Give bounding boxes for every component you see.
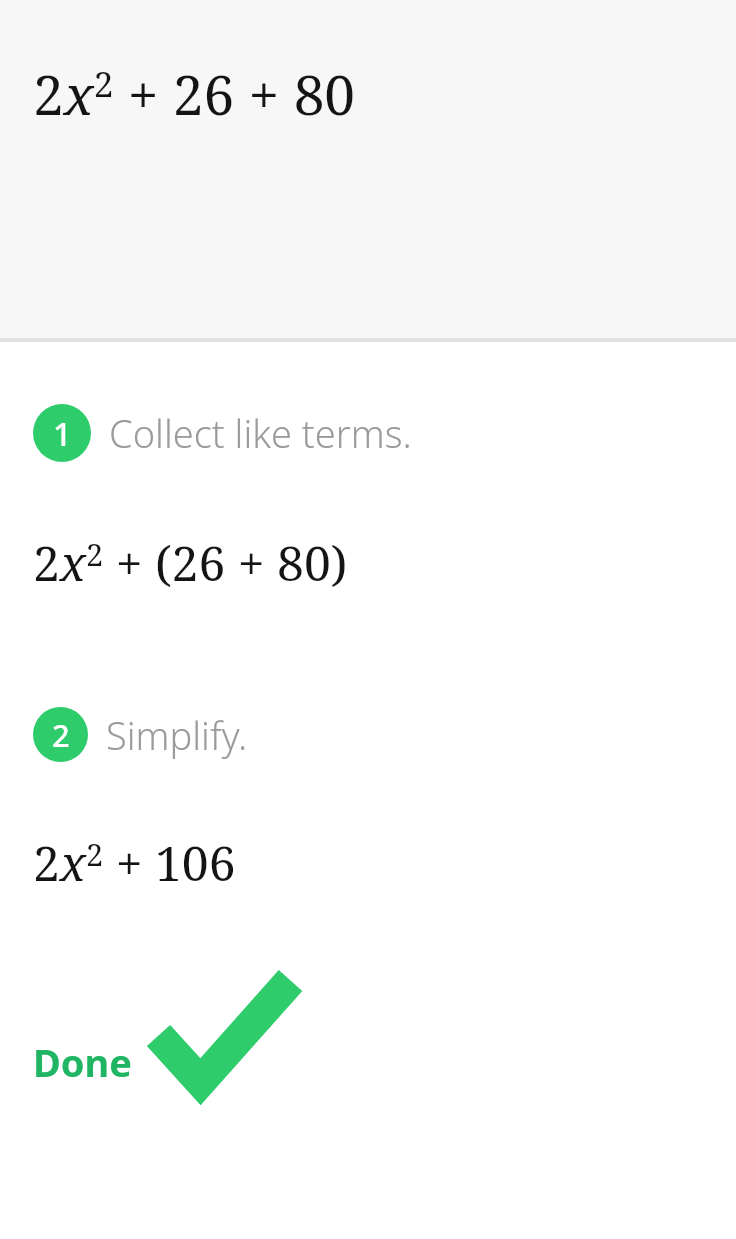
button[interactable]: 2 bbox=[0, 707, 736, 762]
staticText: Collect like terms. bbox=[109, 407, 412, 459]
staticText: Simplify. bbox=[106, 709, 248, 761]
staticText: 2x2 + 26 + 80 bbox=[33, 56, 356, 131]
button[interactable]: Done bbox=[0, 973, 736, 1103]
staticText: 2 bbox=[52, 714, 70, 756]
staticText: 2x2 + 106 bbox=[33, 830, 236, 895]
button[interactable]: 1 bbox=[0, 404, 736, 462]
staticText: 2x2 + (26 + 80) bbox=[33, 530, 348, 595]
staticText: 1 bbox=[53, 411, 72, 455]
other: Completed bbox=[148, 973, 298, 1098]
staticText: Done bbox=[33, 1036, 132, 1088]
